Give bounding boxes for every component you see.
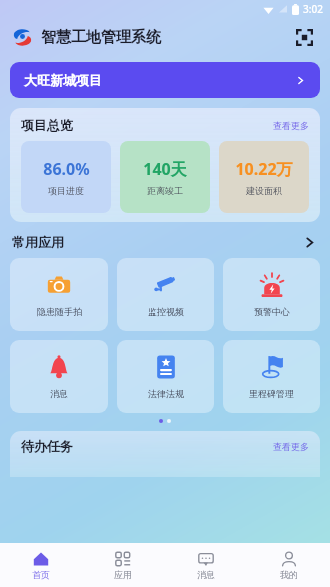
staticText: 3:02 (303, 2, 323, 16)
button[interactable]: 查看更多 (273, 120, 309, 131)
button[interactable]: 应用 (82, 543, 164, 587)
staticText: 查看更多 (273, 441, 309, 452)
button[interactable]: 法律法规 (117, 340, 214, 413)
staticText: 待办任务 (21, 438, 73, 454)
button[interactable]: 消息 (10, 340, 108, 413)
button[interactable]: Scan QR code (291, 24, 317, 50)
staticText: 大旺新城项目 (24, 72, 102, 88)
button[interactable]: 里程碑管理 (223, 340, 320, 413)
staticText: 法律法规 (148, 388, 184, 399)
staticText: 监控视频 (148, 306, 184, 317)
staticText: 86.0% (43, 158, 90, 180)
staticText: 距离竣工 (147, 185, 183, 196)
staticText: 消息 (197, 569, 215, 580)
staticText: 隐患随手拍 (37, 306, 82, 317)
staticText: 10.22万 (235, 158, 293, 180)
button[interactable]: 消息 (164, 543, 247, 587)
staticText: 项目进度 (48, 185, 84, 196)
staticText: 预警中心 (254, 306, 290, 317)
staticText: 140天 (143, 158, 187, 180)
button[interactable]: 监控视频 (117, 258, 214, 331)
staticText: 查看更多 (273, 120, 309, 131)
button[interactable]: 隐患随手拍 (10, 258, 108, 331)
button[interactable]: 140天 (120, 141, 210, 213)
button[interactable]: 预警中心 (223, 258, 320, 331)
staticText: 智慧工地管理系统 (41, 28, 161, 47)
button[interactable]: 首页 (0, 543, 82, 587)
staticText: 消息 (50, 388, 68, 399)
staticText: 我的 (280, 569, 298, 580)
staticText: 应用 (114, 569, 132, 580)
staticText: 里程碑管理 (249, 388, 294, 399)
staticText: 项目总览 (21, 117, 73, 133)
button[interactable]: 86.0% (21, 141, 111, 213)
button[interactable]: 我的 (247, 543, 330, 587)
button[interactable]: More apps (300, 233, 318, 251)
staticText: 建设面积 (246, 185, 282, 196)
staticText: 常用应用 (12, 234, 64, 250)
button[interactable]: 大旺新城项目 (10, 62, 320, 98)
button[interactable]: 查看更多 (273, 441, 309, 452)
button[interactable]: 10.22万 (219, 141, 309, 213)
staticText: 首页 (32, 569, 50, 580)
